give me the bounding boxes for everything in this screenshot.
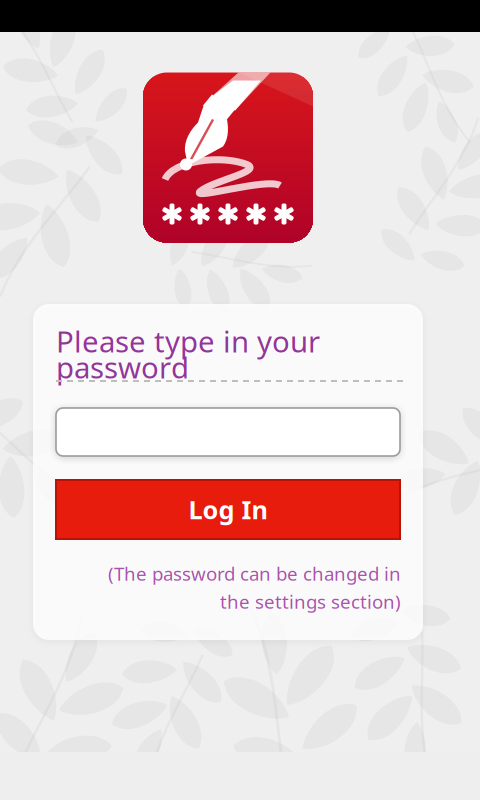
staticText: Please type in your: [56, 321, 320, 360]
button[interactable]: Log In: [56, 480, 400, 539]
staticText: Log In: [188, 493, 267, 526]
staticText: password: [56, 347, 189, 386]
staticText: (The password can be changed in: [108, 561, 401, 586]
button[interactable]: Password: [56, 408, 400, 456]
staticText: the settings section): [220, 589, 401, 614]
